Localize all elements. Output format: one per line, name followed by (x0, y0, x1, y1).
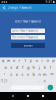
staticText: q (2, 57, 4, 63)
button[interactable]: , (8, 79, 14, 83)
staticText: SUBMIT (23, 44, 32, 47)
staticText: f (22, 64, 23, 70)
button[interactable]: r (17, 58, 22, 62)
staticText: z (10, 71, 12, 77)
staticText: . (39, 79, 40, 83)
button[interactable]: i (39, 58, 45, 62)
button[interactable]: j (36, 65, 42, 69)
button[interactable]: Back (1, 4, 7, 11)
button[interactable]: e (11, 58, 17, 62)
staticText: 9:41 (45, 0, 52, 4)
button[interactable]: Enter New Password (11, 28, 45, 33)
staticText: ☺ (43, 80, 46, 83)
button[interactable]: Re-enter Password (11, 35, 45, 39)
button[interactable]: ?123 (0, 79, 8, 83)
staticText: ⇧ (3, 73, 5, 76)
staticText: e (13, 57, 15, 63)
staticText: w (7, 57, 10, 63)
button[interactable]: s (8, 65, 14, 69)
staticText: Re-enter Password (12, 35, 38, 39)
button[interactable]: x (14, 72, 20, 76)
staticText: d (16, 64, 18, 70)
button[interactable]: Recents (41, 94, 45, 98)
button[interactable]: Back (11, 94, 15, 98)
button[interactable]: ☺ (42, 79, 48, 83)
staticText: h (33, 64, 35, 70)
staticText: Enter New Password (15, 20, 41, 23)
staticText: m (43, 71, 47, 77)
button[interactable]: l (48, 65, 53, 69)
staticText: j (39, 64, 40, 70)
button[interactable]: k (42, 65, 48, 69)
button[interactable]: z (8, 72, 14, 76)
staticText: l (50, 64, 51, 70)
staticText: o (47, 57, 49, 63)
button[interactable]: o (45, 58, 50, 62)
button[interactable]: a (3, 65, 8, 69)
staticText: n (38, 71, 40, 77)
staticText: u (35, 57, 37, 63)
staticText: b (33, 71, 35, 77)
button[interactable]: g (25, 65, 31, 69)
staticText: Enter New Password (12, 29, 38, 32)
button[interactable]: ⇧ (0, 72, 8, 76)
button[interactable]: d (14, 65, 20, 69)
button[interactable]: ⌫ (48, 72, 56, 76)
button[interactable]: t (22, 58, 28, 62)
button[interactable]: p (50, 58, 56, 62)
staticText: c (21, 71, 23, 77)
staticText: x (16, 71, 18, 77)
button[interactable]: Enter (48, 85, 53, 90)
button[interactable]: n (36, 72, 42, 76)
staticText: ?123 (1, 79, 8, 83)
button[interactable]: u (34, 58, 39, 62)
staticText: r (19, 57, 21, 63)
button[interactable]: f (20, 65, 25, 69)
staticText: a (5, 64, 7, 70)
button[interactable]: q (0, 58, 6, 62)
button[interactable]: w (6, 58, 11, 62)
button[interactable]: h (31, 65, 36, 69)
button[interactable]: Home (26, 94, 30, 98)
staticText: Change Password (8, 6, 32, 9)
staticText: k (44, 64, 46, 70)
staticText: , (11, 79, 12, 83)
button[interactable]: y (28, 58, 34, 62)
staticText: y (30, 57, 32, 63)
button[interactable]: m (42, 72, 48, 76)
staticText: ⌫ (50, 73, 54, 76)
staticText: t (25, 57, 26, 63)
staticText: v (27, 71, 29, 77)
button[interactable]: SUBMIT (11, 43, 45, 48)
staticText: s (10, 64, 12, 70)
staticText: p (52, 57, 54, 63)
button[interactable]: b (31, 72, 36, 76)
button[interactable]: c (20, 72, 25, 76)
staticText: g (27, 64, 29, 70)
button[interactable]: v (25, 72, 31, 76)
